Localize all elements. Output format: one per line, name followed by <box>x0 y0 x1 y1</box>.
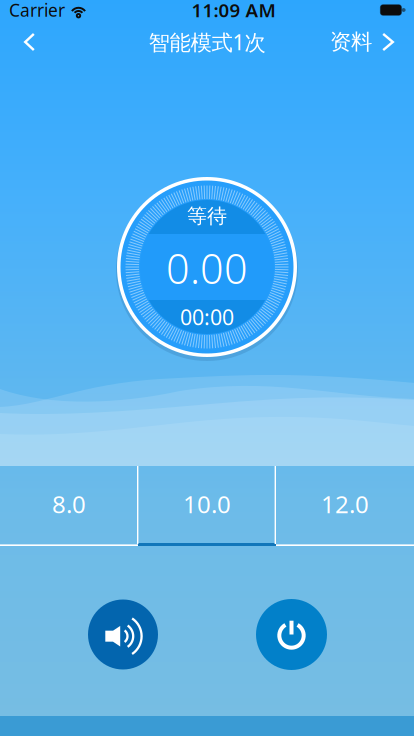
staticText: 00:00 <box>180 303 234 331</box>
staticText: 8.0 <box>52 488 86 520</box>
staticText: 智能模式1次 <box>148 28 265 56</box>
staticText: 11:09 AM <box>191 0 275 22</box>
staticText: 10.0 <box>183 488 231 520</box>
staticText: 12.0 <box>321 488 369 520</box>
staticText: Carrier <box>9 0 65 21</box>
button[interactable]: 10.0 <box>138 466 276 546</box>
staticText: 资料 <box>330 29 372 55</box>
staticText: 0.00 <box>166 241 248 295</box>
button[interactable]: 8.0 <box>0 466 138 546</box>
button[interactable]: Back <box>0 20 53 64</box>
button[interactable]: Power <box>256 599 327 670</box>
button[interactable]: Sound <box>88 599 158 669</box>
button[interactable]: 12.0 <box>276 466 414 546</box>
staticText: 等待 <box>187 204 227 228</box>
button[interactable]: 资料 <box>312 20 414 64</box>
